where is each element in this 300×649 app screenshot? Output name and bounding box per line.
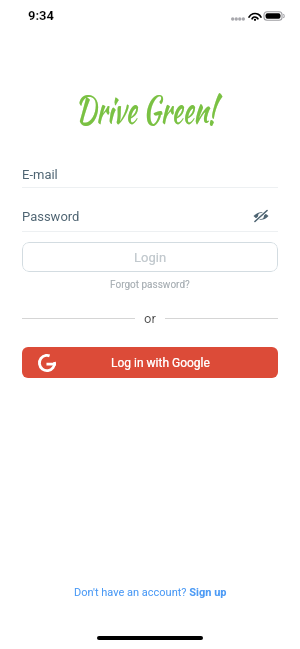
- staticText: E-mail: [22, 167, 278, 182]
- button[interactable]: Login: [22, 242, 278, 272]
- button[interactable]: Show password: [250, 206, 272, 226]
- staticText: Log in with Google: [111, 356, 210, 370]
- button[interactable]: Don't have an account? Sign up: [74, 586, 227, 599]
- staticText: Login: [134, 250, 167, 265]
- staticText: 9:34: [28, 8, 55, 23]
- staticText: or: [144, 311, 156, 326]
- staticText: Password: [22, 209, 256, 224]
- button[interactable]: Log in with Google: [22, 347, 278, 378]
- staticText: Drive Green!: [75, 82, 217, 137]
- button[interactable]: Forgot password?: [110, 279, 190, 291]
